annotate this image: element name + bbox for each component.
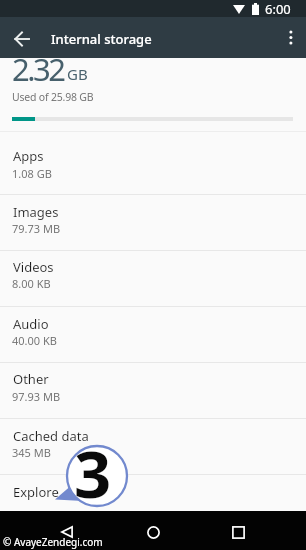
staticText: 6:00 bbox=[265, 0, 291, 17]
button[interactable]: Audio bbox=[0, 307, 306, 363]
staticText: Cached data bbox=[13, 427, 89, 445]
button[interactable]: Explore bbox=[0, 475, 306, 513]
staticText: Videos bbox=[13, 258, 54, 276]
button[interactable]: Cached data bbox=[0, 419, 306, 475]
staticText: © AvayeZendegi.com bbox=[3, 535, 103, 549]
button[interactable] bbox=[224, 514, 252, 550]
staticText: Internal storage bbox=[51, 30, 152, 48]
staticText: GB bbox=[67, 64, 88, 84]
staticText: Apps bbox=[13, 147, 44, 165]
staticText: 97.93 MB bbox=[12, 389, 61, 404]
staticText: 345 MB bbox=[12, 445, 51, 460]
staticText: 3 bbox=[74, 429, 112, 518]
staticText: Images bbox=[13, 203, 59, 221]
staticText: 8.00 KB bbox=[12, 276, 51, 291]
button[interactable]: Other bbox=[0, 363, 306, 419]
staticText: Explore bbox=[13, 483, 59, 501]
staticText: 40.00 KB bbox=[12, 333, 57, 348]
button[interactable] bbox=[139, 514, 167, 550]
staticText: 79.73 MB bbox=[12, 221, 61, 236]
staticText: Other bbox=[13, 370, 49, 388]
button[interactable] bbox=[273, 17, 306, 58]
button[interactable]: Videos bbox=[0, 251, 306, 307]
staticText: Audio bbox=[13, 315, 49, 333]
button[interactable]: Apps bbox=[0, 132, 306, 195]
button[interactable]: Images bbox=[0, 195, 306, 251]
staticText: Used of 25.98 GB bbox=[12, 90, 94, 104]
button[interactable] bbox=[0, 17, 43, 58]
staticText: 2.32 bbox=[12, 48, 64, 90]
staticText: 1.08 GB bbox=[12, 166, 52, 181]
button[interactable] bbox=[53, 514, 81, 550]
